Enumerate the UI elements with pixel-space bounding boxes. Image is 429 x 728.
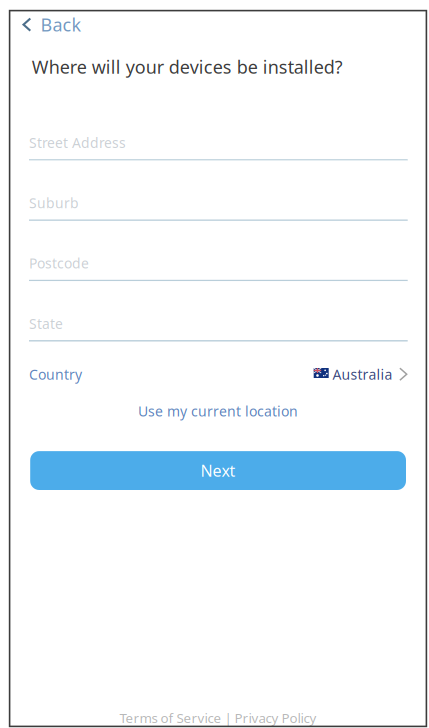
- staticText: State: [29, 314, 63, 333]
- button[interactable]: Terms of Service | Privacy Policy: [10, 709, 426, 727]
- button[interactable]: Back: [10, 13, 92, 37]
- staticText: Street Address: [29, 133, 126, 152]
- button[interactable]: Use my current location: [10, 402, 426, 421]
- staticText: Suburb: [29, 193, 79, 212]
- button[interactable]: Country: [29, 341, 408, 388]
- button[interactable]: Next: [30, 451, 406, 490]
- staticText: Back: [41, 12, 82, 37]
- staticText: Australia: [332, 365, 392, 384]
- staticText: Next: [201, 460, 236, 481]
- staticText: Where will your devices be installed?: [32, 54, 343, 79]
- staticText: Country: [29, 365, 82, 384]
- staticText: Postcode: [29, 254, 89, 273]
- staticText: Use my current location: [138, 402, 298, 421]
- staticText: Terms of Service | Privacy Policy: [119, 709, 316, 727]
